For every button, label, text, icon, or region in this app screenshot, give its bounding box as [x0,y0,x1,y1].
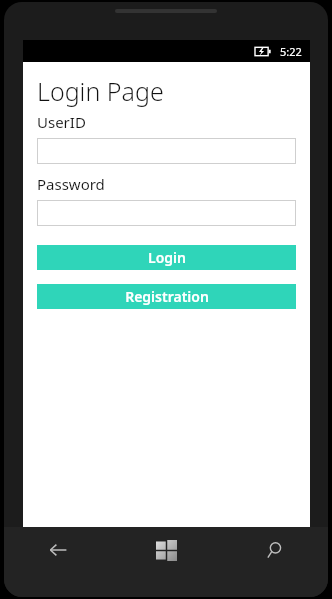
staticText: UserID [37,112,86,132]
other: Battery charging [255,46,271,57]
button[interactable] [37,138,296,164]
staticText: 5:22 [280,44,302,59]
button[interactable]: Registration [37,284,296,309]
staticText: Login Page [37,74,164,108]
staticText: Password [37,174,105,194]
button[interactable]: Search [220,527,328,573]
staticText: Login [148,248,186,267]
button[interactable]: Home [112,527,220,573]
button[interactable]: Login [37,245,296,270]
button[interactable] [37,200,296,226]
staticText: Registration [125,287,209,306]
button[interactable]: Back [4,527,112,573]
